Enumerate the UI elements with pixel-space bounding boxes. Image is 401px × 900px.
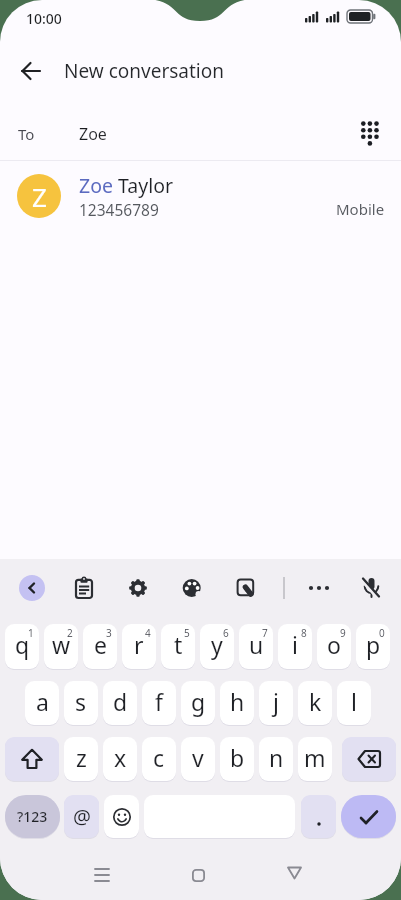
staticText: g (191, 686, 206, 717)
staticText: 8 (301, 626, 307, 640)
staticText: Z (32, 179, 47, 214)
button[interactable]: i (278, 624, 312, 669)
button[interactable]: Z (0, 161, 401, 231)
staticText: q (15, 629, 30, 660)
button[interactable]: h (220, 681, 254, 725)
button[interactable] (226, 568, 266, 608)
staticText: o (327, 629, 341, 660)
button[interactable]: s (64, 681, 98, 725)
staticText: Zoe (79, 123, 107, 145)
button[interactable]: @ (64, 795, 99, 838)
staticText: z (76, 742, 87, 773)
button[interactable] (13, 53, 49, 89)
staticText: c (153, 742, 165, 773)
button[interactable] (301, 795, 336, 838)
staticText: r (134, 629, 144, 660)
staticText: t (174, 629, 183, 660)
button[interactable] (104, 795, 139, 838)
staticText: 4 (145, 626, 151, 640)
button[interactable]: To (0, 108, 401, 160)
staticText: e (94, 629, 107, 660)
button[interactable]: a (25, 681, 59, 725)
staticText: s (75, 686, 87, 717)
button[interactable]: ?123 (5, 795, 60, 838)
staticText: 0 (379, 626, 385, 640)
staticText: b (230, 742, 245, 773)
button[interactable] (299, 568, 339, 608)
staticText: x (114, 742, 127, 773)
button[interactable] (174, 851, 222, 899)
button[interactable]: e (83, 624, 117, 669)
staticText: f (155, 686, 163, 717)
button[interactable]: g (181, 681, 215, 725)
button[interactable]: b (220, 737, 254, 781)
button[interactable]: w (44, 624, 78, 669)
staticText: p (366, 629, 381, 660)
button[interactable]: f (142, 681, 176, 725)
button[interactable]: c (142, 737, 176, 781)
button[interactable]: m (298, 737, 332, 781)
staticText: d (113, 686, 128, 717)
button[interactable] (342, 737, 396, 781)
button[interactable]: o (317, 624, 351, 669)
button[interactable] (270, 851, 318, 899)
staticText: 1 (28, 626, 34, 640)
staticText: w (52, 629, 71, 660)
staticText: 9 (340, 626, 346, 640)
staticText: 6 (223, 626, 229, 640)
button[interactable]: d (103, 681, 137, 725)
button[interactable]: l (337, 681, 371, 725)
staticText: 3 (106, 626, 112, 640)
staticText: Zoe Taylor (79, 172, 174, 199)
button[interactable]: q (5, 624, 39, 669)
staticText: i (292, 629, 298, 660)
button[interactable]: j (259, 681, 293, 725)
button[interactable] (118, 568, 158, 608)
staticText: To (18, 124, 35, 144)
button[interactable] (78, 851, 126, 899)
staticText: k (309, 686, 322, 717)
staticText: j (273, 686, 279, 717)
staticText: Mobile (336, 199, 385, 219)
button[interactable] (341, 795, 396, 838)
button[interactable] (19, 575, 45, 601)
staticText: 5 (184, 626, 190, 640)
button[interactable]: p (356, 624, 390, 669)
button[interactable]: k (298, 681, 332, 725)
button[interactable]: n (259, 737, 293, 781)
staticText: u (249, 629, 264, 660)
button[interactable]: t (161, 624, 195, 669)
button[interactable] (172, 568, 212, 608)
staticText: l (351, 686, 357, 717)
staticText: v (192, 742, 204, 773)
button[interactable]: r (122, 624, 156, 669)
button[interactable]: z (64, 737, 98, 781)
staticText: n (269, 742, 284, 773)
button[interactable]: u (239, 624, 273, 669)
button[interactable] (5, 737, 59, 781)
staticText: New conversation (64, 58, 224, 84)
staticText: 2 (67, 626, 73, 640)
staticText: ?123 (17, 807, 48, 826)
staticText: @ (73, 803, 91, 830)
button[interactable] (64, 568, 104, 608)
button[interactable]: v (181, 737, 215, 781)
button[interactable]: y (200, 624, 234, 669)
staticText: 7 (262, 626, 268, 640)
staticText: h (230, 686, 245, 717)
staticText: y (211, 629, 223, 660)
staticText: a (36, 686, 49, 717)
staticText: m (304, 742, 326, 773)
button[interactable] (351, 568, 391, 608)
staticText: 10:00 (26, 9, 62, 28)
staticText: 123456789 (79, 199, 159, 220)
button[interactable]: x (103, 737, 137, 781)
